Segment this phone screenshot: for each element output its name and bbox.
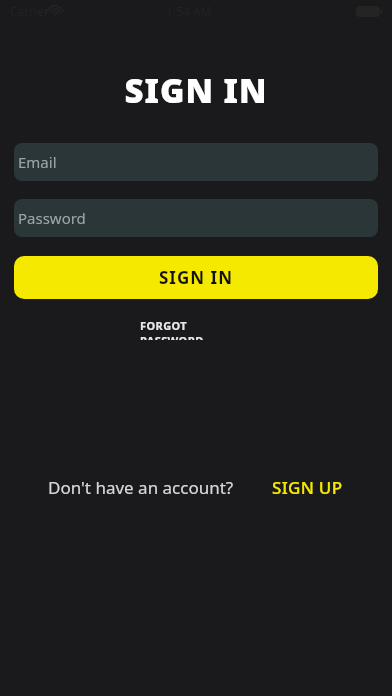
staticText: SIGN UP xyxy=(272,476,343,499)
other: Wi-Fi signal xyxy=(48,4,62,16)
button[interactable]: Email xyxy=(14,143,378,181)
staticText: SIGN IN xyxy=(0,68,392,113)
other: Battery full xyxy=(356,6,383,17)
staticText: FORGOT PASSWORD xyxy=(140,318,252,340)
button[interactable]: SIGN IN xyxy=(14,256,378,299)
staticText: Email xyxy=(18,152,57,172)
staticText: Password xyxy=(18,208,86,228)
button[interactable]: FORGOT PASSWORD xyxy=(140,318,252,340)
staticText: Don't have an account? xyxy=(48,476,234,499)
button[interactable]: Password xyxy=(14,199,378,237)
button[interactable]: SIGN UP xyxy=(270,474,345,501)
staticText: SIGN IN xyxy=(159,266,233,289)
